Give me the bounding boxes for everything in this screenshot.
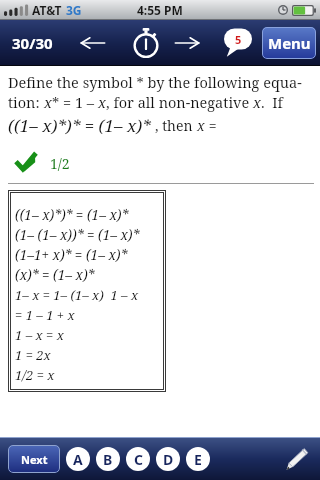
- staticText: x: [98, 92, 106, 112]
- staticText: (1–1+ x)* = (1– x)*: [15, 246, 128, 264]
- staticText: 30/30: [12, 33, 53, 53]
- staticText: A: [73, 450, 83, 469]
- button[interactable]: Draw: [280, 442, 314, 476]
- staticText: ((1– x)*)* = (1– x)*: [15, 206, 129, 224]
- staticText: B: [103, 450, 113, 469]
- staticText: 3G: [66, 2, 82, 18]
- staticText: x: [253, 92, 261, 112]
- staticText: x: [197, 116, 205, 135]
- button[interactable]: E: [186, 447, 210, 471]
- staticText: 1 = 2x: [15, 346, 51, 364]
- staticText: Define the symbol * by the following equ…: [8, 72, 302, 92]
- button[interactable]: B: [96, 447, 120, 471]
- staticText: 4:55 PM: [137, 2, 183, 18]
- staticText: C: [134, 450, 143, 469]
- button[interactable]: A: [66, 447, 90, 471]
- staticText: E: [194, 450, 202, 469]
- staticText: (x)* = (1– x)*: [15, 266, 95, 284]
- staticText: x: [44, 92, 52, 112]
- button[interactable]: Timer: [126, 23, 166, 63]
- button[interactable]: 30/30: [6, 29, 59, 57]
- staticText: 1/2 = x: [15, 366, 55, 384]
- staticText: ((1– x)*)* = (1– x)*: [8, 114, 155, 137]
- staticText: Next: [21, 452, 48, 467]
- staticText: 1– x = 1– (1– x) 1 – x: [15, 286, 139, 304]
- button[interactable]: Previous: [76, 26, 110, 60]
- staticText: 5: [235, 32, 242, 47]
- staticText: , for all non-negative: [106, 92, 253, 112]
- staticText: =: [205, 116, 217, 135]
- button[interactable]: Comments, 5: [218, 25, 258, 59]
- button[interactable]: Next: [8, 445, 60, 473]
- staticText: , then: [155, 116, 197, 135]
- button[interactable]: D: [156, 447, 180, 471]
- staticText: Menu: [268, 33, 311, 53]
- staticText: 1/2: [50, 154, 70, 173]
- staticText: D: [163, 450, 174, 469]
- button[interactable]: Next question: [170, 26, 204, 60]
- staticText: AT&T: [32, 2, 62, 18]
- staticText: tion:: [8, 92, 44, 112]
- button[interactable]: C: [126, 447, 150, 471]
- staticText: . If: [261, 92, 283, 112]
- button[interactable]: 1/2: [8, 151, 70, 175]
- staticText: 1 – x = x: [15, 326, 64, 344]
- staticText: * = 1 –: [52, 92, 98, 112]
- staticText: = 1 – 1 + x: [15, 306, 75, 324]
- staticText: (1– (1– x))* = (1– x)*: [15, 226, 140, 244]
- button[interactable]: Menu: [262, 27, 316, 59]
